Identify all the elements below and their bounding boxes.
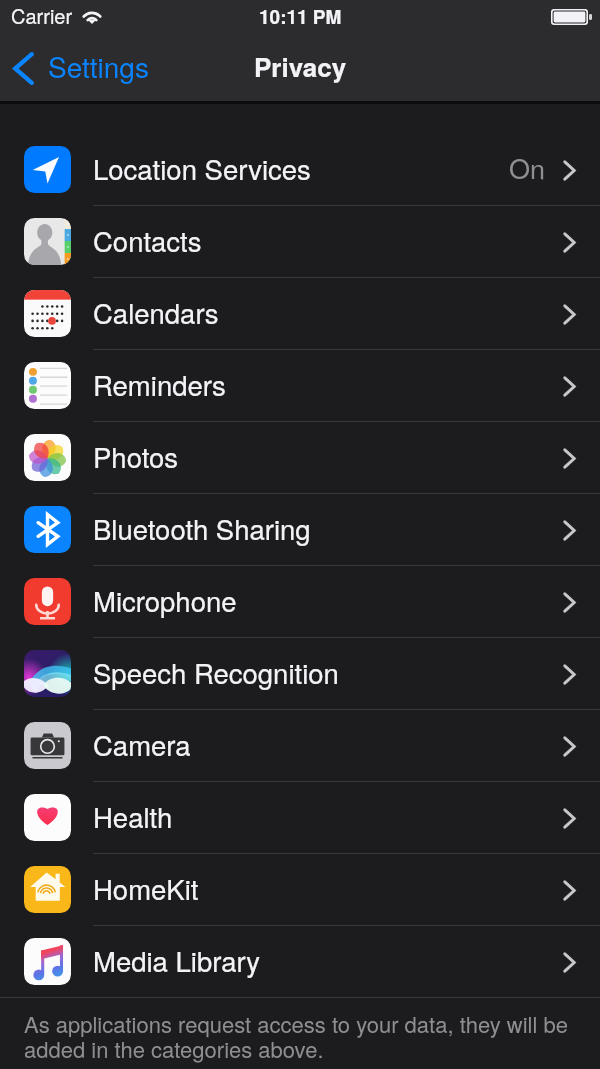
staticText: Speech Recognition (93, 652, 339, 691)
staticText: Microphone (93, 580, 237, 619)
button[interactable]: Back to Settings (0, 43, 161, 95)
staticText: Privacy (254, 48, 347, 85)
button[interactable]: Reminders (0, 350, 600, 421)
staticText: On (509, 148, 546, 187)
staticText: Location Services (93, 148, 311, 187)
staticText: Reminders (93, 364, 226, 403)
button[interactable]: Location Services (0, 134, 600, 205)
staticText: 10:11 PM (259, 3, 342, 30)
button[interactable]: Bluetooth Sharing (0, 494, 600, 565)
button[interactable]: Health (0, 782, 600, 853)
staticText: As applications request access to your d… (24, 1008, 584, 1064)
staticText: Calendars (93, 292, 219, 331)
staticText: Camera (93, 724, 191, 763)
staticText: Bluetooth Sharing (93, 508, 311, 547)
button[interactable]: Speech Recognition (0, 638, 600, 709)
staticText: Photos (93, 436, 179, 475)
button[interactable]: Contacts (0, 206, 600, 277)
staticText: Media Library (93, 940, 261, 979)
staticText: Contacts (93, 220, 202, 259)
staticText: Carrier (11, 1, 73, 30)
button[interactable]: Media Library (0, 926, 600, 997)
staticText: Settings (48, 46, 149, 86)
staticText: Health (93, 796, 173, 835)
button[interactable]: HomeKit (0, 854, 600, 925)
staticText: HomeKit (93, 868, 199, 907)
button[interactable]: Camera (0, 710, 600, 781)
button[interactable]: Calendars (0, 278, 600, 349)
button[interactable]: Photos (0, 422, 600, 493)
button[interactable]: Microphone (0, 566, 600, 637)
